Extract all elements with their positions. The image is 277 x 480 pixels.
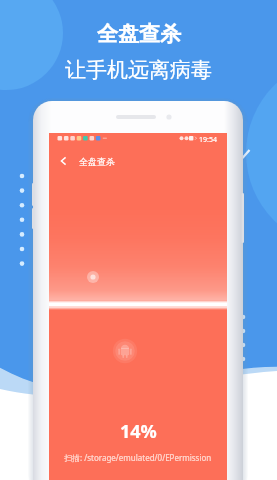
staticText: 全盘查杀 bbox=[97, 21, 181, 47]
staticText: 扫描: /storage/emulated/0/EPermission bbox=[64, 452, 212, 463]
staticText: 14% bbox=[120, 419, 157, 444]
button[interactable]: Back bbox=[56, 153, 72, 169]
staticText: 让手机远离病毒 bbox=[65, 57, 212, 83]
staticText: 19:54 bbox=[199, 135, 217, 145]
staticText: 全盘查杀 bbox=[79, 156, 115, 167]
